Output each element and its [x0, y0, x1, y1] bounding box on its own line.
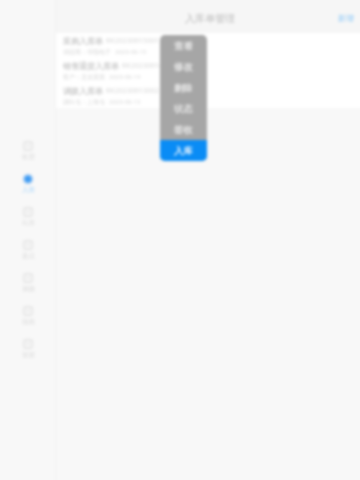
staticText: 2023-06-15	[115, 48, 147, 56]
staticText: 签收	[174, 124, 193, 136]
staticText: 销售退货入库单	[63, 61, 119, 71]
staticText: 修改	[174, 61, 193, 73]
staticText: 入库单管理	[185, 12, 235, 25]
staticText: 删除	[174, 82, 193, 94]
button[interactable]: 调拨入库单	[56, 83, 360, 108]
button[interactable]: 查看	[160, 35, 207, 56]
button[interactable]: 新增	[338, 13, 354, 23]
staticText: 客户：北京某某	[63, 73, 105, 81]
staticText: RK2023061402	[122, 61, 171, 71]
staticText: 入库	[174, 145, 193, 157]
button[interactable]: 删除	[160, 77, 207, 98]
staticText: 2023-06-14	[109, 73, 141, 81]
staticText: 调出仓：上海仓	[63, 98, 105, 106]
button[interactable]: 状态	[160, 98, 207, 119]
staticText: 入库	[22, 186, 35, 194]
staticText: 新增	[338, 13, 354, 23]
staticText: 调拨入库单	[63, 86, 103, 96]
button[interactable]: 入库	[0, 172, 56, 205]
button[interactable]: 修改	[160, 56, 207, 77]
staticText: 查看	[174, 40, 193, 52]
staticText: RK20230613002	[106, 86, 159, 96]
staticText: 采购入库单	[63, 36, 103, 46]
staticText: 供应商：华强电子	[63, 48, 111, 56]
button[interactable]: 销售退货入库单	[56, 58, 360, 83]
staticText: 状态	[174, 103, 193, 115]
staticText: 2023-06-13	[109, 98, 141, 106]
staticText: 调拨	[22, 285, 35, 293]
button[interactable]: 采购入库单	[56, 33, 360, 58]
staticText: RK20230615001	[106, 36, 159, 46]
button[interactable]: 入库	[160, 140, 207, 161]
button[interactable]: 签收	[160, 119, 207, 140]
